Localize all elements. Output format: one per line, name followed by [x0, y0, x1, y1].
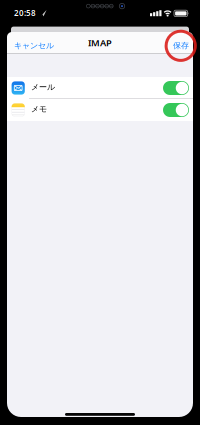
- button[interactable]: メール: [0, 0, 26, 14]
- staticText: メール: [31, 82, 55, 92]
- staticText: キャンセル: [14, 41, 54, 50]
- staticText: メモ: [31, 104, 47, 114]
- button[interactable]: 保存: [0, 0, 24, 11]
- button[interactable]: キャンセル: [0, 0, 60, 11]
- staticText: 保存: [173, 41, 189, 50]
- staticText: 20:58: [14, 8, 36, 18]
- button[interactable]: メモ: [0, 0, 26, 14]
- staticText: IMAP: [88, 36, 112, 49]
